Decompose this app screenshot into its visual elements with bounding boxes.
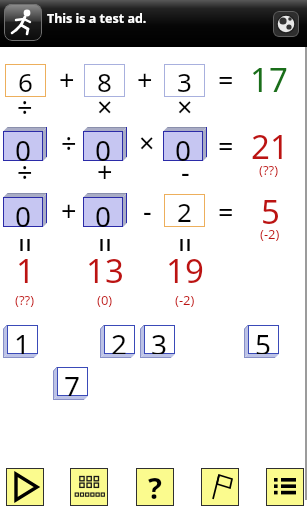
staticText: + [59, 61, 75, 98]
staticText: = [218, 127, 234, 164]
staticText: 2 [111, 325, 128, 354]
button[interactable] [70, 468, 108, 506]
staticText: 1 [16, 248, 35, 293]
staticText: ÷ [17, 153, 33, 190]
staticText: (??) [15, 291, 35, 309]
button[interactable]: 5 [244, 325, 279, 358]
button[interactable]: 1 [3, 325, 38, 358]
staticText: + [137, 61, 153, 98]
staticText: 17 [250, 57, 288, 102]
button[interactable]: 2 [100, 325, 135, 358]
staticText: + [97, 153, 113, 190]
staticText: 3 [151, 325, 168, 354]
staticText: = [218, 61, 234, 98]
button[interactable]: 0 [83, 127, 127, 161]
staticText: 1 [14, 325, 31, 354]
staticText: - [181, 153, 190, 190]
staticText: ? [148, 468, 162, 506]
button[interactable]: 3 [140, 325, 175, 358]
button[interactable]: 3 [164, 64, 205, 97]
staticText: 6 [18, 64, 33, 97]
button[interactable]: 0 [83, 193, 127, 227]
staticText: (-2) [175, 291, 195, 309]
button[interactable]: ? [136, 468, 174, 506]
staticText: 3 [177, 64, 192, 97]
button[interactable]: 0 [3, 127, 47, 161]
staticText: × [177, 88, 193, 125]
staticText: (-2) [260, 225, 280, 243]
button[interactable] [201, 468, 239, 506]
staticText: 0 [95, 197, 112, 227]
staticText: 0 [15, 197, 32, 227]
button[interactable]: This is a test ad. [0, 0, 307, 47]
button[interactable]: 7 [53, 367, 88, 400]
staticText: 8 [97, 64, 112, 97]
staticText: 2 [177, 194, 192, 227]
button[interactable] [266, 468, 304, 506]
button[interactable]: 8 [84, 64, 125, 97]
staticText: 5 [255, 325, 272, 354]
button[interactable]: 6 [5, 64, 46, 97]
staticText: This is a test ad. [47, 10, 147, 27]
staticText: 0 [175, 131, 192, 161]
staticText: 0 [95, 131, 112, 161]
staticText: 5 [261, 189, 280, 234]
button[interactable]: 0 [163, 127, 207, 161]
staticText: (??) [259, 161, 279, 179]
staticText: × [139, 124, 155, 161]
staticText: + [61, 192, 77, 229]
staticText: 21 [251, 124, 289, 169]
staticText: - [143, 192, 152, 229]
staticText: × [97, 88, 113, 125]
staticText: ÷ [61, 124, 77, 161]
button[interactable] [6, 468, 44, 506]
button[interactable]: 0 [3, 193, 47, 227]
staticText: 7 [64, 367, 81, 396]
staticText: (0) [97, 291, 113, 309]
staticText: ÷ [17, 88, 33, 125]
staticText: = [218, 193, 234, 230]
button[interactable]: 2 [164, 194, 205, 227]
staticText: 13 [86, 248, 124, 293]
staticText: 0 [15, 131, 32, 161]
staticText: 19 [166, 248, 204, 293]
